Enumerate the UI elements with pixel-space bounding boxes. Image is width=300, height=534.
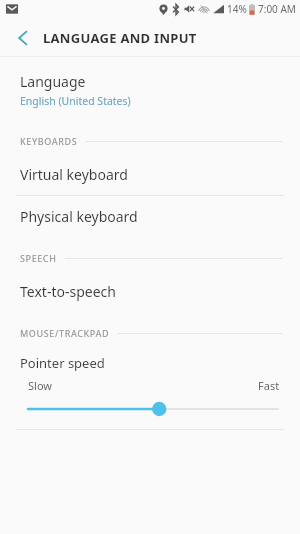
staticText: Language bbox=[20, 72, 86, 91]
staticText: 7:00 AM bbox=[258, 2, 296, 16]
staticText: English (United States) bbox=[20, 94, 131, 108]
staticText: KEYBOARDS bbox=[20, 135, 78, 147]
staticText: Virtual keyboard bbox=[20, 165, 128, 184]
button[interactable]: Language bbox=[0, 58, 300, 122]
button[interactable]: Physical keyboard bbox=[0, 196, 300, 237]
button[interactable]: Text-to-speech bbox=[0, 271, 300, 312]
button[interactable]: Virtual keyboard bbox=[0, 154, 300, 195]
staticText: MOUSE/TRACKPAD bbox=[20, 327, 110, 339]
staticText: LANGUAGE AND INPUT bbox=[43, 29, 197, 47]
staticText: Fast bbox=[258, 378, 280, 393]
staticText: Pointer speed bbox=[20, 354, 105, 372]
staticText: Physical keyboard bbox=[20, 207, 138, 226]
staticText: SPEECH bbox=[20, 252, 57, 264]
staticText: Slow bbox=[28, 378, 52, 393]
button[interactable]: Back bbox=[8, 23, 38, 53]
staticText: Text-to-speech bbox=[20, 282, 116, 301]
staticText: 14% bbox=[227, 2, 247, 16]
button[interactable]: Pointer speed slider bbox=[20, 399, 282, 419]
